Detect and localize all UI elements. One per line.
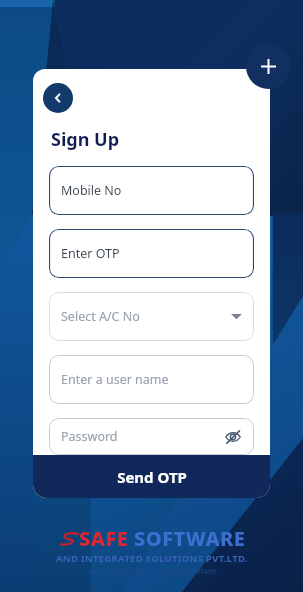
staticText: Enter OTP (61, 245, 242, 262)
staticText: Sign Up (51, 127, 120, 152)
button[interactable]: Mobile No (49, 166, 254, 215)
staticText: Password (61, 428, 224, 445)
button[interactable]: Enter OTP (49, 229, 254, 278)
button[interactable]: Enter a user name (49, 355, 254, 404)
staticText: SOFTWARE (134, 525, 246, 552)
staticText: • AN ISO 9001 : 2015 CERTIFIED COMPANY (88, 567, 217, 576)
button[interactable]: Send OTP (33, 455, 270, 498)
button[interactable]: Back (43, 83, 73, 113)
staticText: Enter a user name (61, 371, 242, 388)
staticText: Mobile No (61, 182, 242, 199)
staticText: SAFE (79, 525, 129, 552)
button[interactable]: Password (49, 418, 254, 455)
other: Toggle password visibility (224, 428, 242, 446)
staticText: Send OTP (117, 467, 187, 487)
staticText: Select A/C No (61, 308, 231, 325)
button[interactable]: Select A/C No (49, 292, 254, 341)
staticText: AND INTEGRATED SOLUTIONS PVT.LTD. (56, 552, 248, 565)
button[interactable]: Add (246, 44, 291, 89)
